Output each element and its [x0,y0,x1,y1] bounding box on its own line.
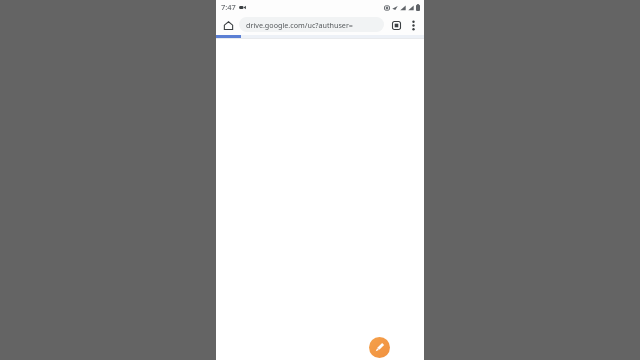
staticText: drive.google.com/uc?authuser= [246,20,353,30]
button[interactable]: Edit [369,337,390,358]
button[interactable]: drive.google.com/uc?authuser= [239,17,384,32]
button[interactable]: Switch tabs [387,16,405,34]
staticText: 7:47 [221,2,236,12]
button[interactable]: More options [405,17,421,33]
button[interactable]: Home [219,16,237,34]
